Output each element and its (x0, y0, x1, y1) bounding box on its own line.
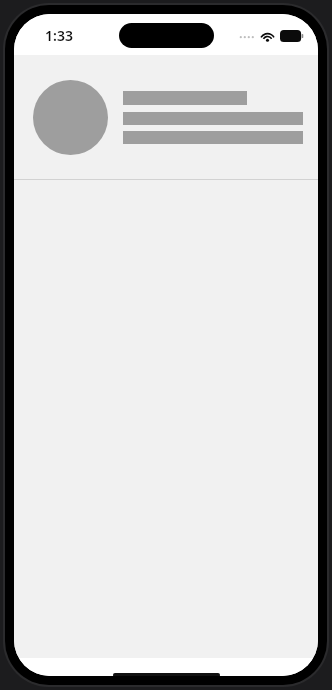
staticText: 1:33 (45, 26, 73, 45)
button[interactable]: Loading profile (14, 55, 318, 179)
